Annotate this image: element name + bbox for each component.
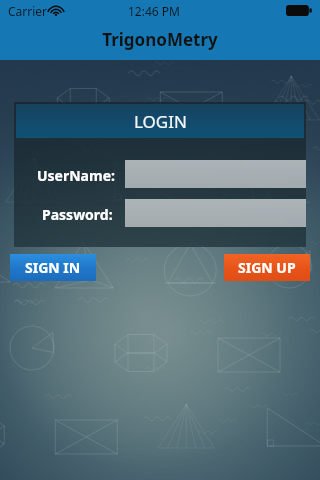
staticText: Password: [42,205,113,224]
staticText: UserName: [37,166,115,185]
button[interactable]: SIGN UP [224,254,310,281]
button[interactable]: SIGN IN [10,254,96,281]
staticText: LOGIN [134,110,187,133]
staticText: SIGN UP [238,258,296,277]
button[interactable]: LOGIN [16,104,304,138]
staticText: 12:46 PM [128,3,180,19]
staticText: TrigonoMetry [0,28,320,52]
staticText: SIGN IN [25,258,81,277]
staticText: Carrier [8,3,48,19]
